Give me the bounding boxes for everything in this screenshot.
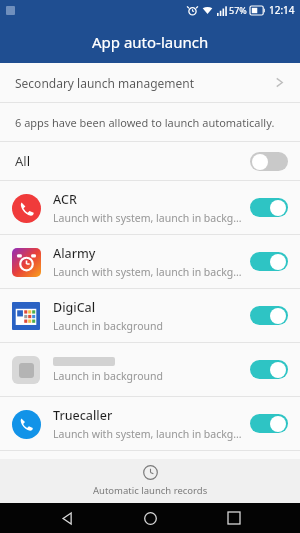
button[interactable]: Secondary launch management xyxy=(0,63,300,102)
button[interactable]: Truecaller xyxy=(0,397,300,450)
button[interactable]: Back xyxy=(50,503,84,533)
staticText: Secondary launch management xyxy=(15,75,195,91)
button[interactable]: Automatic launch records xyxy=(0,459,300,503)
button[interactable]: On xyxy=(250,252,288,271)
button[interactable]: On xyxy=(250,306,288,325)
button[interactable]: Home xyxy=(133,503,167,533)
staticText: Alarmy xyxy=(53,245,96,262)
staticText: Truecaller xyxy=(53,407,113,424)
button[interactable]: Launch in background xyxy=(0,343,300,396)
staticText: All xyxy=(15,152,31,170)
staticText: Launch with system, launch in background xyxy=(53,427,242,441)
staticText: Launch in background xyxy=(53,369,163,383)
button[interactable]: Alarmy xyxy=(0,235,300,288)
staticText: 12:14 xyxy=(269,3,295,17)
staticText: Automatic launch records xyxy=(93,484,208,497)
staticText: 6 apps have been allowed to launch autom… xyxy=(15,115,275,130)
staticText: Launch with system, launch in background xyxy=(53,211,242,225)
button[interactable]: On xyxy=(250,198,288,217)
button[interactable]: Twilight xyxy=(0,451,300,503)
staticText: ACR xyxy=(53,191,77,208)
button[interactable]: ACR xyxy=(0,181,300,234)
button[interactable]: Recents xyxy=(217,503,251,533)
staticText: Launch with system, launch in background xyxy=(53,265,242,279)
other: Open xyxy=(274,77,285,88)
button[interactable]: On xyxy=(250,360,288,379)
staticText: Launch with system, launch in background xyxy=(53,480,242,494)
button[interactable]: All xyxy=(0,142,300,180)
other: Automatic launch records xyxy=(143,465,158,480)
button[interactable]: On xyxy=(250,414,288,433)
button[interactable]: DigiCal xyxy=(0,289,300,342)
staticText: Launch in background xyxy=(53,319,163,333)
staticText: DigiCal xyxy=(53,299,96,316)
staticText: 57% xyxy=(229,4,247,16)
button[interactable]: Off xyxy=(250,152,288,171)
staticText: App auto-launch xyxy=(92,32,209,52)
